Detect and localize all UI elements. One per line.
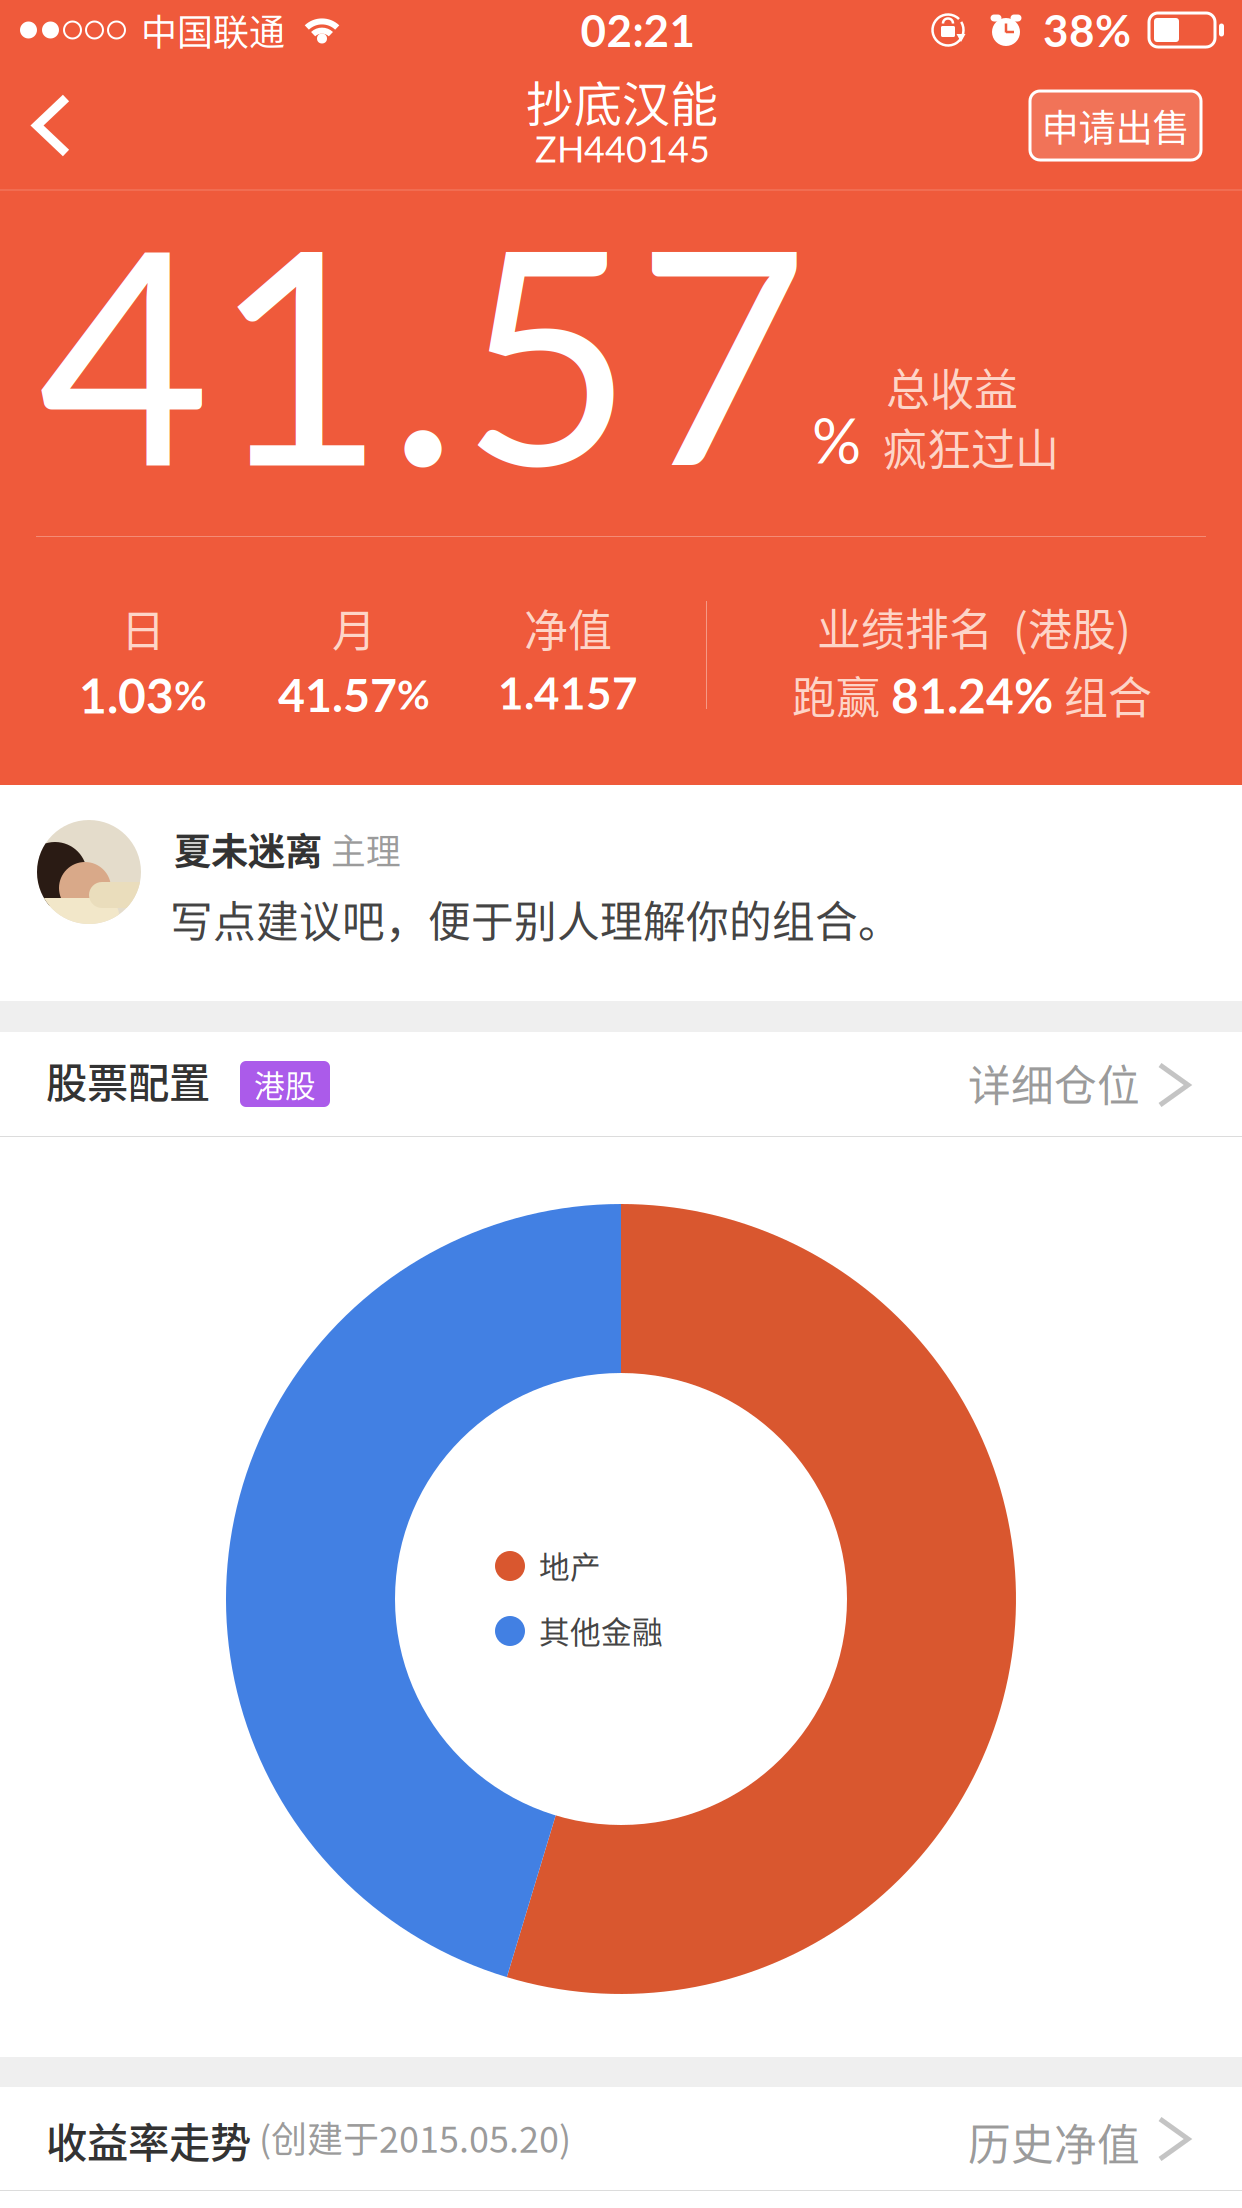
staticText: 疯狂过山 bbox=[883, 415, 1059, 479]
button[interactable]: Back bbox=[7, 68, 102, 183]
staticText: 总收益 bbox=[886, 355, 1018, 419]
staticText: 中国联通 bbox=[141, 4, 285, 56]
staticText: 历史净值 bbox=[968, 2111, 1140, 2173]
staticText: 跑赢 bbox=[792, 663, 880, 727]
staticText: 地产 bbox=[539, 1543, 601, 1587]
staticText: 主理 bbox=[331, 824, 401, 874]
staticText: 股票配置 bbox=[46, 1050, 210, 1110]
staticText: 其他金融 bbox=[539, 1608, 663, 1652]
staticText: 38% bbox=[1043, 4, 1131, 56]
staticText: 业绩排名 (港股) bbox=[817, 595, 1131, 659]
staticText: 净值 bbox=[524, 596, 612, 660]
staticText: % bbox=[397, 670, 430, 718]
staticText: 详细仓位 bbox=[968, 1052, 1140, 1114]
staticText: 1.4157 bbox=[498, 666, 638, 719]
staticText: 1.03 bbox=[79, 666, 174, 724]
staticText: 02:21 bbox=[580, 4, 695, 56]
staticText: 日 bbox=[121, 596, 165, 660]
staticText: ZH440145 bbox=[535, 127, 710, 170]
staticText: 港股 bbox=[254, 1062, 316, 1106]
staticText: 夏未迷离 bbox=[174, 822, 322, 876]
staticText: % bbox=[812, 403, 861, 477]
staticText: 申请出售 bbox=[1041, 98, 1189, 153]
staticText: 月 bbox=[332, 596, 376, 660]
staticText: 41.57 bbox=[278, 666, 397, 722]
staticText: 收益率走势 bbox=[46, 2110, 251, 2170]
staticText: 81.24% bbox=[891, 666, 1053, 724]
button[interactable]: 股票配置 bbox=[0, 1032, 1242, 1136]
button[interactable]: 收益率走势 bbox=[0, 2087, 1242, 2190]
staticText: % bbox=[174, 671, 207, 719]
staticText: 抄底汉能 bbox=[526, 66, 718, 135]
staticText: 41.57 bbox=[38, 172, 808, 529]
button[interactable]: 申请出售 bbox=[1030, 91, 1201, 160]
staticText: 组合 bbox=[1064, 663, 1152, 727]
staticText: 写点建议吧，便于别人理解你的组合。 bbox=[170, 888, 901, 950]
staticText: (创建于2015.05.20) bbox=[259, 2111, 571, 2163]
